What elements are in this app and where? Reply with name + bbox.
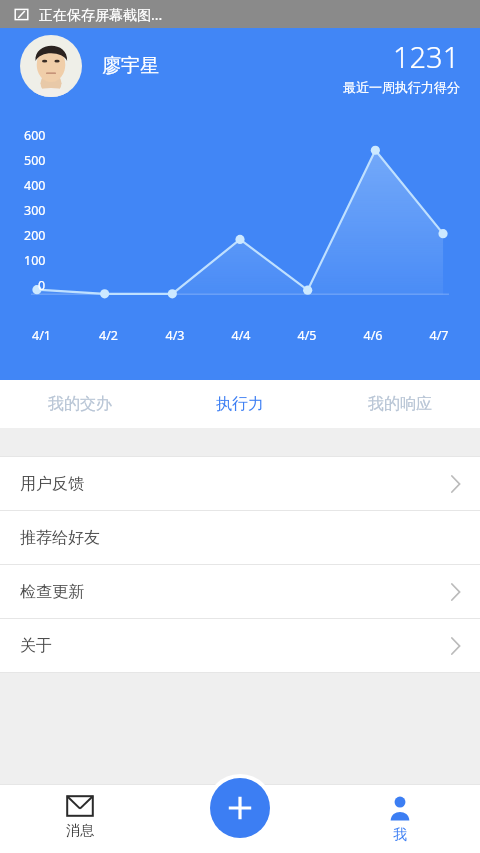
staticText: 300 bbox=[24, 202, 46, 219]
staticText: 正在保存屏幕截图... bbox=[39, 5, 163, 24]
staticText: 500 bbox=[24, 152, 46, 169]
button[interactable]: 推荐给好友 bbox=[0, 511, 480, 564]
staticText: 推荐给好友 bbox=[20, 528, 100, 548]
staticText: 我的响应 bbox=[368, 394, 432, 414]
staticText: 最近一周执行力得分 bbox=[343, 79, 460, 95]
button[interactable]: 我的响应 bbox=[320, 380, 480, 428]
button[interactable]: 我的交办 bbox=[0, 380, 160, 428]
staticText: 4/4 bbox=[208, 327, 274, 344]
staticText: 4/7 bbox=[406, 327, 472, 344]
staticText: 检查更新 bbox=[20, 582, 84, 602]
staticText: 执行力 bbox=[216, 394, 264, 414]
staticText: 4/1 bbox=[8, 327, 75, 344]
button[interactable]: Add bbox=[210, 778, 270, 838]
button[interactable]: 我 bbox=[320, 784, 480, 853]
staticText: 廖宇星 bbox=[102, 54, 159, 78]
staticText: 4/6 bbox=[340, 327, 406, 344]
button[interactable]: 用户反馈 bbox=[0, 457, 480, 510]
button[interactable]: Profile photo bbox=[20, 35, 82, 97]
staticText: 4/2 bbox=[75, 327, 142, 344]
staticText: 4/5 bbox=[274, 327, 340, 344]
staticText: 200 bbox=[24, 227, 46, 244]
staticText: 4/3 bbox=[142, 327, 208, 344]
staticText: 400 bbox=[24, 177, 46, 194]
staticText: 100 bbox=[24, 252, 46, 269]
staticText: 0 bbox=[38, 277, 46, 294]
button[interactable]: 执行力 bbox=[160, 380, 320, 428]
staticText: 消息 bbox=[66, 822, 94, 840]
button[interactable]: 检查更新 bbox=[0, 565, 480, 618]
button[interactable]: 关于 bbox=[0, 619, 480, 672]
button[interactable]: 消息 bbox=[0, 784, 160, 853]
staticText: 我 bbox=[393, 826, 407, 844]
staticText: 用户反馈 bbox=[20, 474, 84, 494]
staticText: 600 bbox=[24, 127, 46, 144]
staticText: 我的交办 bbox=[48, 394, 112, 414]
staticText: 1231 bbox=[393, 37, 460, 76]
staticText: 关于 bbox=[20, 636, 52, 656]
